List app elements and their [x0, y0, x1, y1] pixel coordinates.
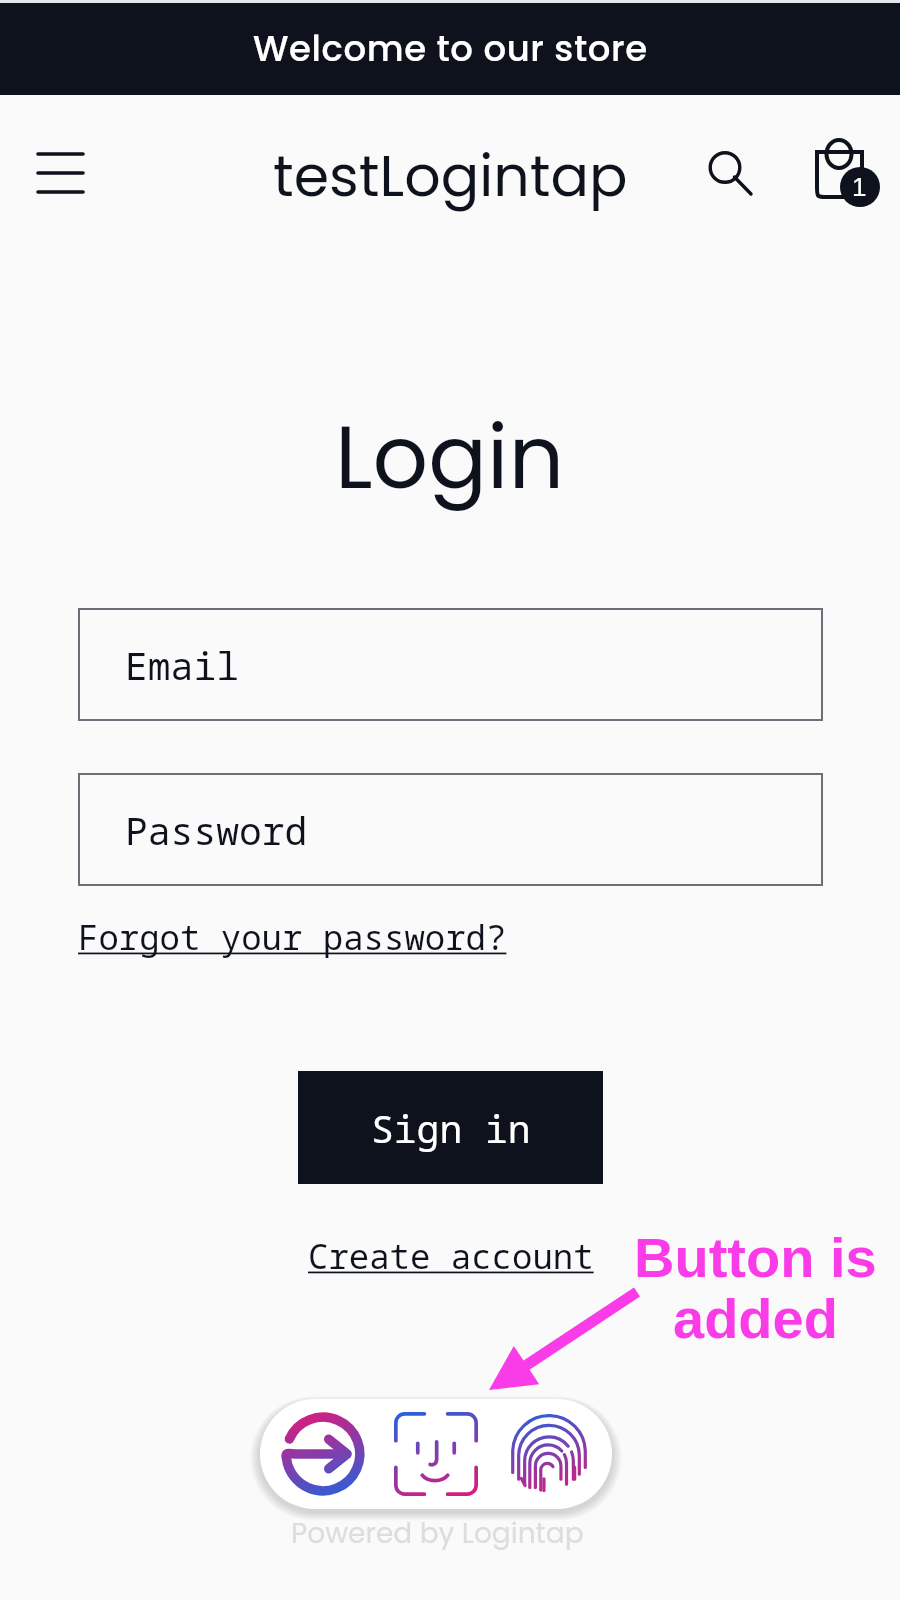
staticText: Create account: [308, 1233, 594, 1279]
staticText: Email: [125, 639, 240, 691]
button[interactable]: Sign in with Logintap: [281, 1412, 365, 1496]
staticText: testLogintap: [273, 136, 628, 216]
button[interactable]: Sign in with Face ID: [394, 1412, 478, 1496]
button[interactable]: Sign in: [298, 1071, 603, 1184]
button[interactable]: Password: [78, 773, 823, 886]
staticText: Login: [335, 397, 565, 519]
staticText: 1: [852, 172, 867, 201]
button[interactable]: Email: [78, 608, 823, 721]
button[interactable]: Sign in with fingerprint: [507, 1412, 591, 1496]
button[interactable]: Forgot your password?: [78, 914, 507, 960]
staticText: Sign in: [371, 1102, 531, 1154]
staticText: Button is: [634, 1226, 876, 1289]
button[interactable]: Search: [690, 132, 764, 206]
button[interactable]: Create account: [308, 1233, 594, 1279]
staticText: Powered by Logintap: [291, 1514, 584, 1553]
staticText: Welcome to our store: [253, 24, 648, 74]
button[interactable]: Menu: [22, 139, 99, 211]
staticText: added: [673, 1287, 838, 1350]
button[interactable]: Cart, 1 item: [810, 122, 892, 204]
staticText: Forgot your password?: [78, 914, 507, 960]
staticText: Password: [125, 804, 308, 856]
